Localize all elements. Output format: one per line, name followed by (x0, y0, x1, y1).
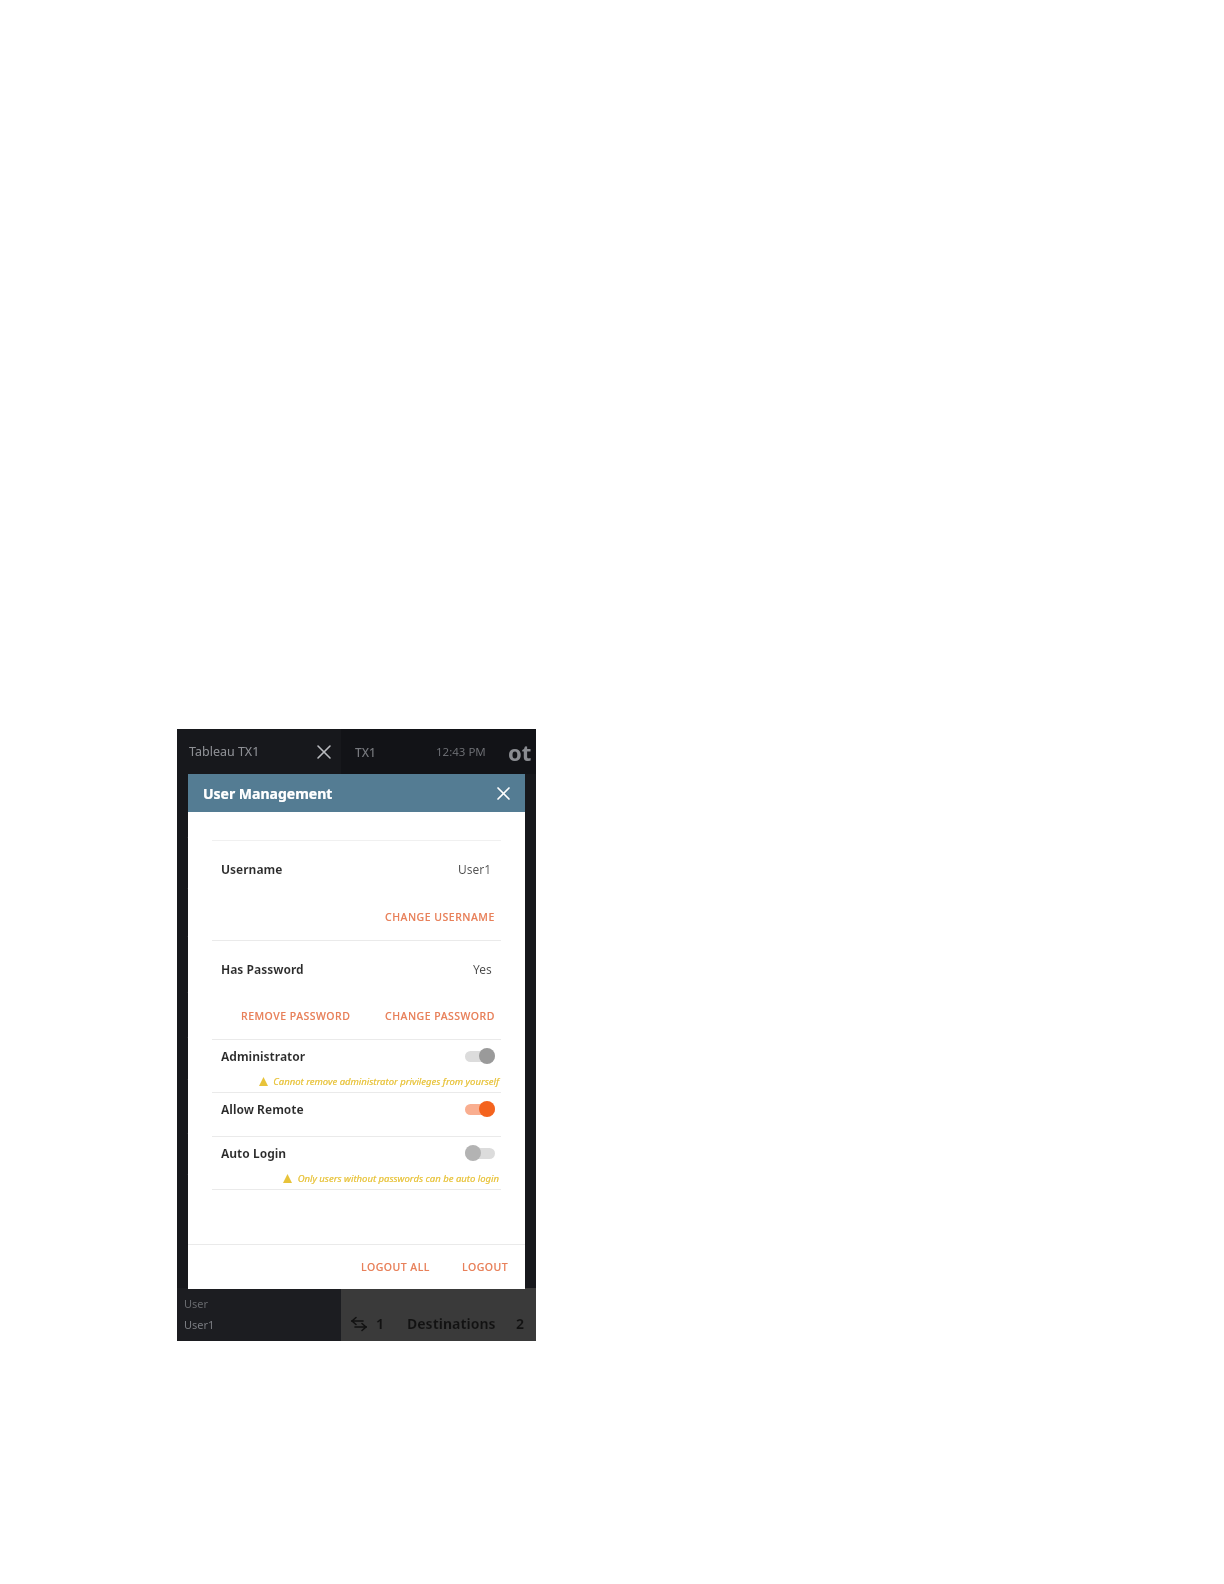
staticText: User (184, 1296, 209, 1311)
staticText: 1 (376, 1314, 385, 1333)
staticText: 2 (516, 1314, 525, 1333)
staticText: Username (221, 861, 283, 877)
staticText: User1 (184, 1317, 215, 1332)
button[interactable]: CHANGE USERNAME (383, 907, 497, 927)
staticText: User1 (458, 861, 492, 877)
staticText: LOGOUT (462, 1260, 509, 1274)
staticText: ot (508, 737, 532, 767)
button[interactable]: Close dialog (489, 779, 517, 807)
staticText: CHANGE PASSWORD (385, 1009, 495, 1023)
button[interactable]: Administrator (188, 1040, 525, 1071)
staticText: Yes (473, 961, 492, 977)
button[interactable]: Close panel (311, 739, 337, 765)
staticText: CHANGE USERNAME (385, 910, 495, 924)
staticText: TX1 (355, 744, 376, 760)
button[interactable]: LOGOUT ALL (359, 1257, 432, 1277)
staticText: User Management (203, 784, 333, 803)
staticText: Administrator (221, 1048, 306, 1064)
button[interactable]: REMOVE PASSWORD (239, 1006, 353, 1026)
staticText: LOGOUT ALL (361, 1260, 430, 1274)
button[interactable]: LOGOUT (460, 1257, 511, 1277)
staticText: REMOVE PASSWORD (241, 1009, 351, 1023)
staticText: Destinations (407, 1314, 496, 1333)
button[interactable]: Allow Remote (188, 1093, 525, 1124)
staticText: Auto Login (221, 1145, 287, 1161)
staticText: Cannot remove administrator privileges f… (273, 1075, 499, 1088)
staticText: Has Password (221, 961, 304, 977)
staticText: Only users without passwords can be auto… (297, 1172, 499, 1185)
staticText: Allow Remote (221, 1101, 304, 1117)
staticText: 12:43 PM (436, 744, 486, 760)
button[interactable]: Auto Login (188, 1137, 525, 1168)
staticText: Tableau TX1 (189, 743, 260, 760)
button[interactable]: CHANGE PASSWORD (383, 1006, 497, 1026)
